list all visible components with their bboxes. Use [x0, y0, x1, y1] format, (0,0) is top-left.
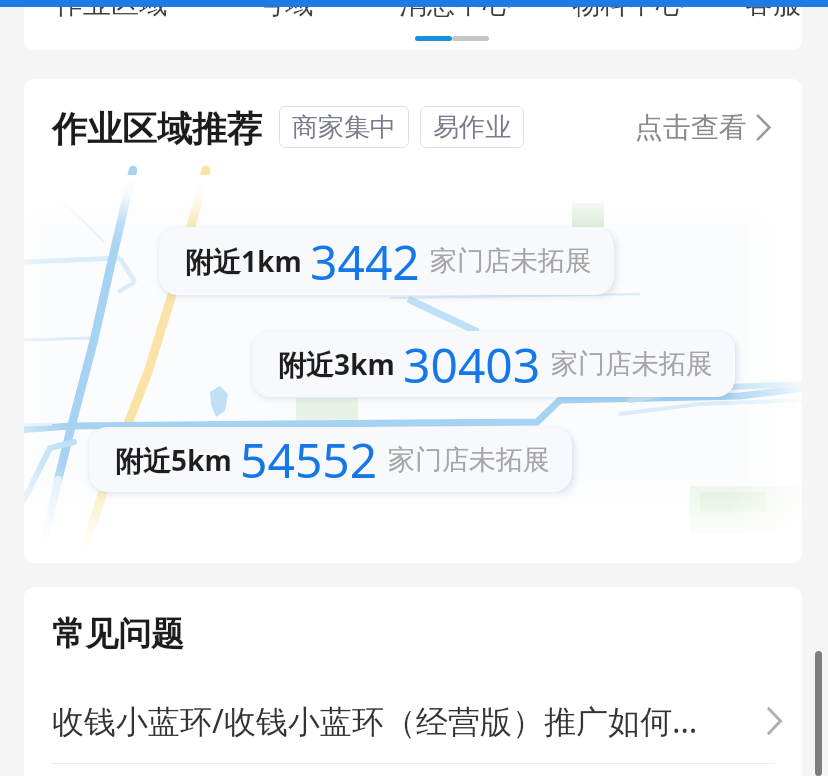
button[interactable]: 号域 [257, 0, 313, 21]
button[interactable]: 易作业 [420, 106, 524, 148]
staticText: 点击查看 [635, 110, 747, 145]
button[interactable]: 附近1km [159, 227, 614, 295]
staticText: 作业区域推荐 [52, 107, 262, 151]
button[interactable]: 消息中心 [399, 0, 511, 21]
staticText: 3442 [310, 229, 420, 294]
button[interactable]: 作业区域 [55, 0, 167, 21]
staticText: 54552 [240, 427, 378, 492]
staticText: 常见问题 [52, 613, 184, 655]
button[interactable]: 点击查看 [635, 110, 771, 145]
staticText: 家门店未拓展 [388, 443, 550, 477]
staticText: 附近5km [115, 441, 232, 479]
button[interactable]: 收钱小蓝环/收钱小蓝环（经营版）推广如何… [52, 679, 782, 763]
staticText: 附近1km [185, 242, 302, 280]
button[interactable]: 附近3km [252, 331, 735, 397]
staticText: 30403 [403, 332, 541, 397]
staticText: 易作业 [433, 111, 511, 144]
staticText: 家门店未拓展 [551, 347, 713, 381]
button[interactable]: 物料中心 [572, 0, 684, 21]
staticText: 商家集中 [292, 111, 396, 144]
staticText: 收钱小蓝环/收钱小蓝环（经营版）推广如何… [52, 699, 698, 743]
button[interactable]: 附近5km [89, 427, 572, 492]
button[interactable]: 商家集中 [279, 106, 409, 148]
staticText: 附近3km [278, 345, 395, 383]
button[interactable]: 客服 [745, 0, 801, 21]
staticText: 家门店未拓展 [430, 244, 592, 278]
